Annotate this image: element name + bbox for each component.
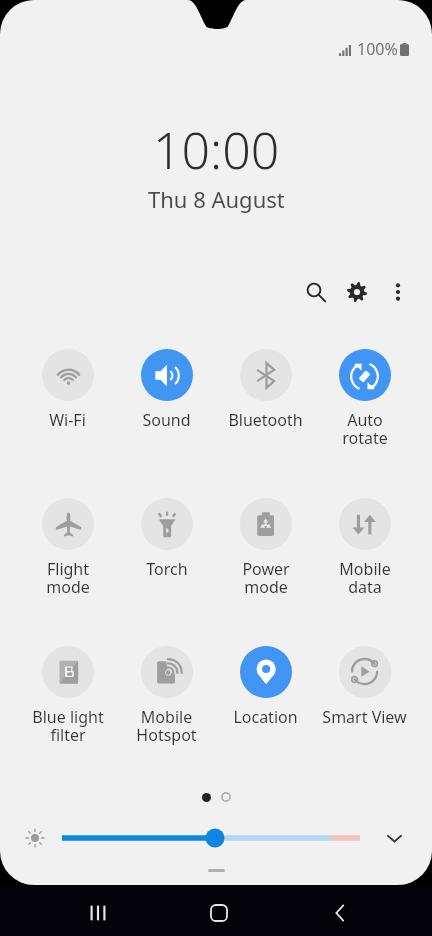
button[interactable]: Back [315, 888, 364, 936]
button[interactable]: Home [194, 888, 243, 936]
button[interactable]: Flight mode [18, 498, 117, 598]
staticText: Thu 8 August [148, 184, 285, 214]
button[interactable]: Torch [117, 498, 216, 580]
staticText: Torch [146, 558, 188, 580]
button[interactable]: Auto rotate [315, 349, 414, 449]
staticText: 100% [357, 38, 398, 60]
button[interactable]: Expand quick settings [377, 821, 411, 855]
button[interactable]: Settings [336, 271, 377, 312]
button[interactable]: Blue light filter [18, 646, 117, 746]
staticText: Bluetooth [228, 409, 303, 431]
button[interactable]: Wi-Fi [18, 349, 117, 431]
staticText: Power mode [242, 558, 290, 598]
button[interactable]: Power mode [216, 498, 315, 598]
button[interactable]: Search [295, 271, 336, 312]
button[interactable]: Recent apps [73, 888, 122, 936]
staticText: Mobile Hotspot [136, 706, 197, 746]
staticText: Flight mode [46, 558, 90, 598]
staticText: Auto rotate [342, 409, 388, 449]
staticText: Smart View [322, 706, 407, 728]
button[interactable]: Mobile data [315, 498, 414, 598]
button[interactable]: Smart View [315, 646, 414, 728]
button[interactable]: Sound [117, 349, 216, 431]
staticText: 10:00 [153, 116, 280, 184]
staticText: Sound [142, 409, 191, 431]
staticText: Mobile data [339, 558, 391, 598]
button[interactable]: Mobile Hotspot [117, 646, 216, 746]
staticText: Blue light filter [32, 706, 104, 746]
button[interactable]: Location [216, 646, 315, 728]
staticText: Location [233, 706, 298, 728]
button[interactable]: More options [377, 271, 418, 312]
staticText: Wi-Fi [49, 409, 86, 431]
button[interactable]: Bluetooth [216, 349, 315, 431]
